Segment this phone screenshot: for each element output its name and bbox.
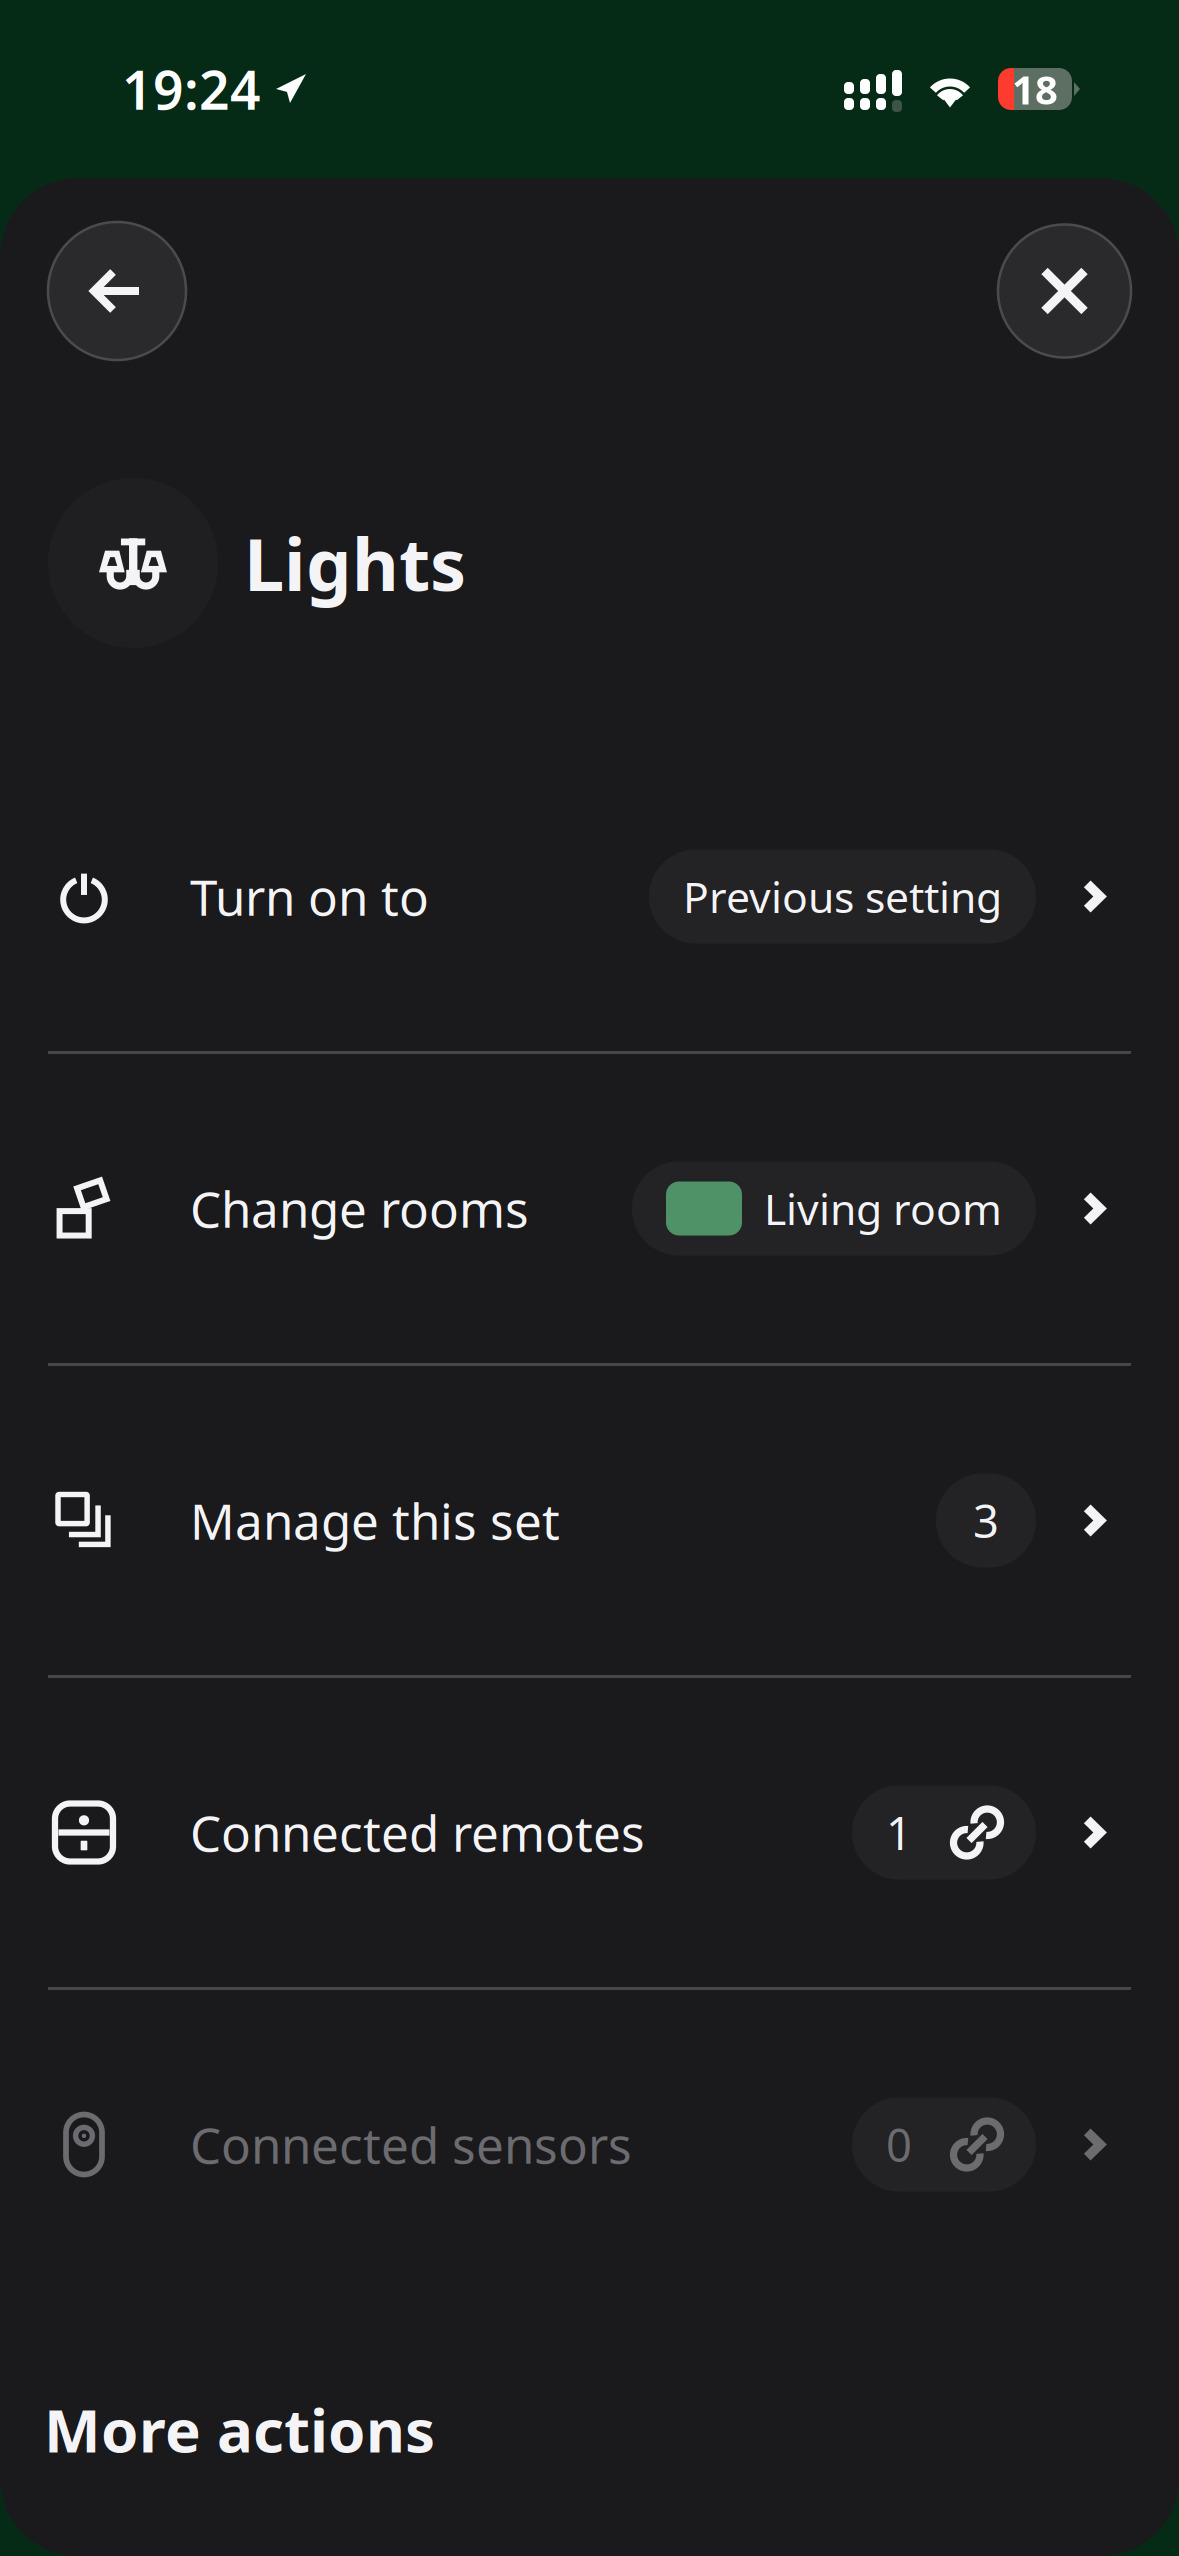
staticText: Turn on to (190, 864, 429, 929)
button[interactable]: Close (998, 224, 1131, 357)
button[interactable]: Manage this set (0, 1366, 1179, 1675)
staticText: Connected remotes (190, 1800, 645, 1865)
staticText: Connected sensors (190, 2112, 632, 2177)
staticText: 1 (886, 1802, 912, 1863)
button[interactable]: Turn on to (0, 742, 1179, 1051)
staticText: Living room (764, 1180, 1002, 1237)
button[interactable]: Connected sensors (0, 1990, 1179, 2299)
button[interactable]: Change rooms (0, 1054, 1179, 1363)
staticText: More actions (44, 2389, 435, 2469)
staticText: Lights (244, 515, 466, 611)
button[interactable]: Connected remotes (0, 1678, 1179, 1987)
staticText: Previous setting (683, 868, 1002, 925)
staticText: Manage this set (190, 1488, 560, 1553)
staticText: 18 (1012, 62, 1058, 115)
staticText: 3 (973, 1490, 999, 1551)
staticText: 19:24 (122, 54, 261, 124)
staticText: 0 (886, 2114, 912, 2175)
staticText: Change rooms (190, 1176, 529, 1241)
button[interactable]: Back (48, 222, 186, 360)
